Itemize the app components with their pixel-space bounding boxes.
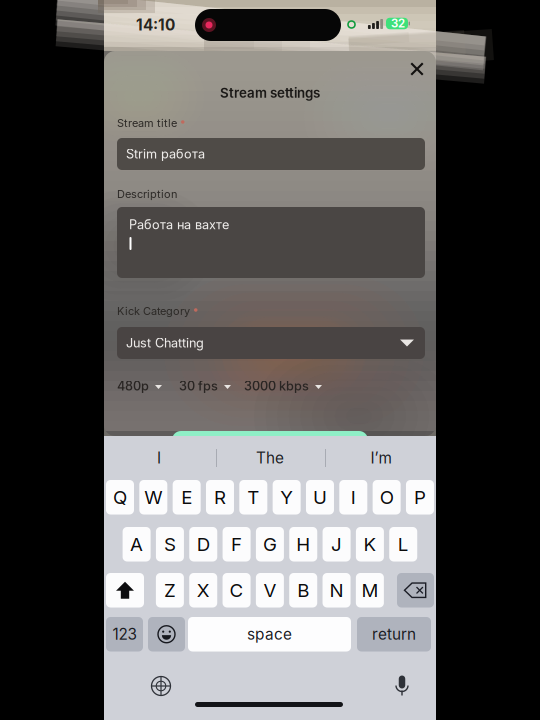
button[interactable]: K: [356, 527, 384, 561]
staticText: S: [164, 533, 176, 556]
button[interactable]: Работа на вахте: [117, 207, 425, 278]
button[interactable]: W: [139, 480, 167, 514]
button[interactable]: 30 fps: [179, 377, 231, 395]
staticText: I: [157, 449, 161, 467]
staticText: space: [247, 625, 292, 644]
staticText: J: [331, 533, 342, 556]
button[interactable]: P: [406, 480, 434, 514]
button[interactable]: U: [306, 480, 334, 514]
button[interactable]: V: [256, 573, 284, 607]
button[interactable]: T: [239, 480, 267, 514]
button[interactable]: Z: [156, 573, 184, 607]
staticText: P: [414, 486, 426, 509]
staticText: Stream title: [117, 116, 177, 130]
staticText: Just Chatting: [126, 335, 204, 351]
button[interactable]: I: [339, 480, 367, 514]
button[interactable]: X: [189, 573, 217, 607]
staticText: M: [361, 579, 378, 602]
button[interactable]: return: [357, 617, 431, 651]
staticText: O: [380, 486, 394, 509]
staticText: Работа на вахте: [129, 217, 229, 232]
button[interactable]: Delete: [397, 573, 434, 607]
staticText: B: [297, 579, 309, 602]
button[interactable]: 480p: [117, 377, 162, 395]
button[interactable]: space: [188, 617, 351, 651]
button[interactable]: C: [223, 573, 251, 607]
button[interactable]: Go live: [172, 431, 368, 465]
staticText: Stream settings: [220, 85, 320, 101]
button[interactable]: G: [256, 527, 284, 561]
staticText: H: [296, 533, 310, 556]
staticText: E: [181, 486, 192, 509]
staticText: The: [256, 449, 284, 467]
staticText: A: [130, 533, 143, 556]
staticText: 14:10: [136, 16, 175, 34]
staticText: X: [197, 579, 210, 602]
staticText: Strim работа: [126, 146, 205, 162]
button[interactable]: O: [373, 480, 401, 514]
button[interactable]: Q: [106, 480, 134, 514]
staticText: U: [313, 486, 327, 509]
button[interactable]: Dictation: [389, 672, 415, 700]
button[interactable]: A: [123, 527, 151, 561]
button[interactable]: Y: [273, 480, 301, 514]
button[interactable]: Emoji keyboard: [148, 617, 185, 651]
staticText: 30 fps: [179, 378, 218, 394]
staticText: 32: [391, 17, 405, 30]
button[interactable]: I: [104, 436, 214, 480]
staticText: I: [351, 486, 356, 509]
staticText: Z: [164, 579, 176, 602]
staticText: C: [230, 579, 244, 602]
button[interactable]: F: [223, 527, 251, 561]
button[interactable]: J: [323, 527, 351, 561]
staticText: I’m: [370, 449, 391, 467]
button[interactable]: R: [206, 480, 234, 514]
button[interactable]: I’m: [326, 436, 436, 480]
staticText: return: [372, 625, 416, 644]
staticText: 3000 kbps: [244, 378, 309, 394]
button[interactable]: Next keyboard: [147, 672, 175, 700]
button[interactable]: S: [156, 527, 184, 561]
staticText: T: [247, 486, 259, 509]
staticText: N: [329, 579, 343, 602]
staticText: F: [231, 533, 242, 556]
staticText: Q: [113, 486, 127, 509]
button[interactable]: The: [215, 436, 325, 480]
button[interactable]: Close: [400, 52, 434, 86]
staticText: Kick Category: [117, 304, 190, 318]
button[interactable]: Strim работа: [117, 138, 425, 170]
staticText: Y: [280, 486, 293, 509]
staticText: W: [144, 486, 162, 509]
button[interactable]: Shift: [106, 573, 144, 607]
staticText: K: [363, 533, 376, 556]
button[interactable]: B: [289, 573, 317, 607]
button[interactable]: N: [322, 573, 350, 607]
button[interactable]: Just Chatting: [117, 327, 425, 359]
staticText: V: [263, 579, 276, 602]
button[interactable]: M: [356, 573, 384, 607]
button[interactable]: D: [189, 527, 217, 561]
staticText: D: [197, 533, 210, 556]
staticText: G: [263, 533, 277, 556]
button[interactable]: 3000 kbps: [244, 377, 322, 395]
staticText: Description: [117, 187, 177, 201]
button[interactable]: E: [173, 480, 201, 514]
button[interactable]: L: [389, 527, 417, 561]
staticText: 123: [112, 625, 136, 644]
staticText: L: [398, 533, 409, 556]
staticText: 480p: [117, 378, 149, 394]
button[interactable]: H: [289, 527, 317, 561]
staticText: R: [214, 486, 226, 509]
button[interactable]: 123: [106, 617, 143, 651]
